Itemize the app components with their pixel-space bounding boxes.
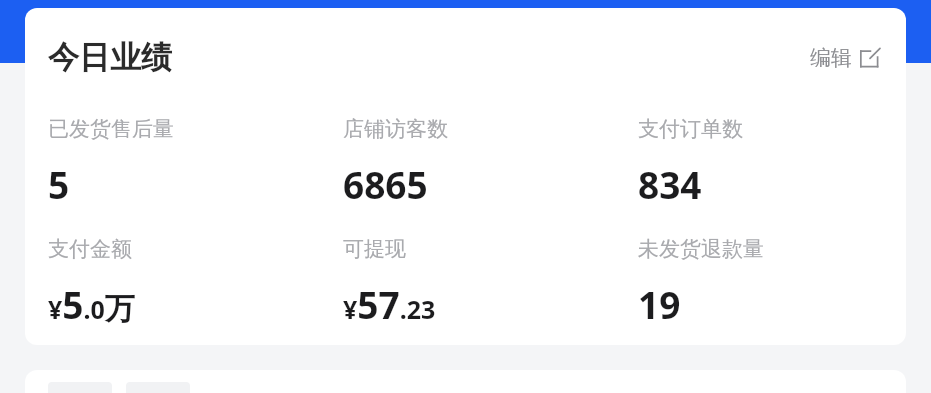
button[interactable]: 未发货退款量	[638, 236, 888, 329]
button[interactable]: 支付金额	[48, 236, 343, 329]
button[interactable]: 编辑	[806, 41, 884, 75]
button[interactable]: 支付订单数	[638, 116, 888, 209]
staticText: 今日业绩	[48, 38, 172, 77]
staticText: 支付金额	[48, 236, 132, 262]
button[interactable]: 已发货售后量	[48, 116, 343, 209]
staticText: 6865	[343, 159, 428, 209]
staticText: 可提现	[343, 236, 406, 262]
staticText: ¥57.23	[343, 279, 436, 329]
staticText: 编辑	[810, 45, 852, 71]
staticText: 店铺访客数	[343, 116, 448, 142]
staticText: 已发货售后量	[48, 116, 174, 142]
staticText: 5	[48, 159, 70, 209]
staticText: 支付订单数	[638, 116, 743, 142]
staticText: ¥5.0万	[48, 279, 135, 329]
button[interactable]: 可提现	[343, 236, 638, 329]
button[interactable]	[25, 370, 906, 393]
staticText: 834	[638, 159, 702, 209]
staticText: 19	[638, 279, 681, 329]
button[interactable]: 店铺访客数	[343, 116, 638, 209]
staticText: 未发货退款量	[638, 236, 764, 262]
